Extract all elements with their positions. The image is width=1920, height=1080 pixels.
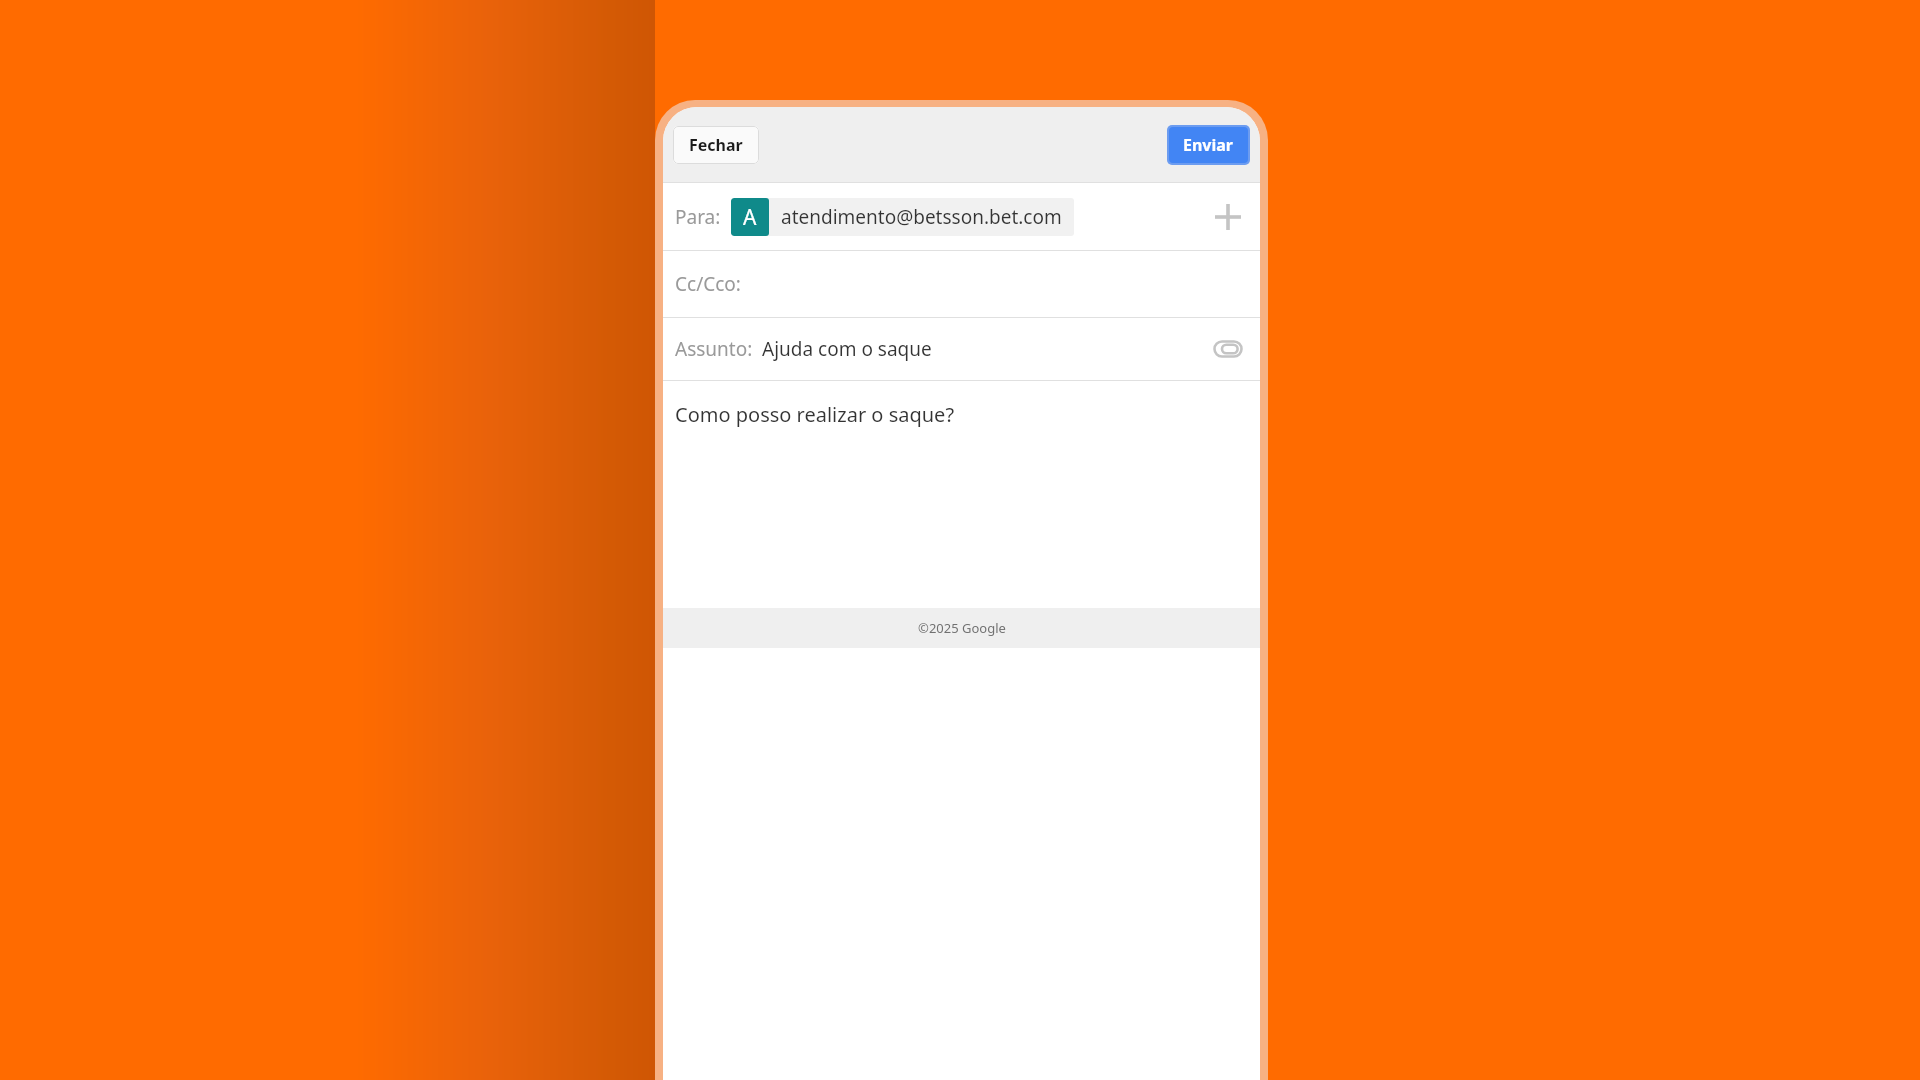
button[interactable]: Fechar xyxy=(673,126,759,164)
button[interactable]: Assunto: xyxy=(663,318,1260,380)
button[interactable]: Enviar xyxy=(1169,127,1248,163)
staticText: Assunto: xyxy=(675,336,753,362)
staticText: ©2025 Google xyxy=(918,619,1006,637)
button[interactable]: Anexar arquivo xyxy=(1208,329,1248,369)
button[interactable]: Como posso realizar o saque? xyxy=(663,381,1260,608)
staticText: Enviar xyxy=(1183,134,1234,156)
button[interactable]: Cc/Cco: xyxy=(663,251,1260,317)
button[interactable]: Para: xyxy=(663,183,1260,250)
staticText: atendimento@betsson.bet.com xyxy=(781,204,1062,230)
button[interactable]: Adicionar destinatário xyxy=(1206,195,1250,239)
staticText: Ajuda com o saque xyxy=(762,336,932,362)
staticText: Para: xyxy=(675,204,721,230)
staticText: Cc/Cco: xyxy=(675,271,741,297)
staticText: Fechar xyxy=(689,134,743,156)
staticText: A xyxy=(743,203,757,232)
staticText: Como posso realizar o saque? xyxy=(675,401,955,428)
